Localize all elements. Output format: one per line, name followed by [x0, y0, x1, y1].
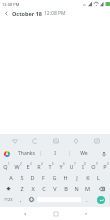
- button[interactable]: N: [71, 183, 82, 194]
- staticText: I: [82, 163, 84, 170]
- staticText: Thanks: [18, 150, 35, 157]
- button[interactable]: .: [82, 194, 92, 205]
- button[interactable]: Emoji: [26, 194, 36, 205]
- button[interactable]: Home: [49, 207, 62, 220]
- staticText: W: [14, 163, 20, 170]
- button[interactable]: J: [71, 172, 82, 183]
- staticText: D: [30, 174, 35, 181]
- button[interactable]: P: [99, 161, 110, 172]
- button[interactable]: Google: [0, 147, 13, 160]
- button[interactable]: I: [41, 147, 69, 160]
- button[interactable]: Thanks: [13, 147, 40, 160]
- button[interactable]: X: [27, 183, 38, 194]
- button[interactable]: A: [5, 172, 16, 183]
- button[interactable]: H: [60, 172, 71, 183]
- button[interactable]: E: [22, 161, 33, 172]
- staticText: ,: [20, 196, 22, 204]
- staticText: F: [42, 174, 45, 181]
- staticText: A: [9, 174, 13, 181]
- button[interactable]: F: [38, 172, 49, 183]
- button[interactable]: GIF: [28, 134, 41, 147]
- button[interactable]: D: [27, 172, 38, 183]
- button[interactable]: Y: [55, 161, 66, 172]
- button[interactable]: Gallery: [49, 134, 62, 147]
- staticText: H: [63, 174, 68, 181]
- button[interactable]: O: [88, 161, 99, 172]
- staticText: Y: [59, 163, 63, 170]
- staticText: 12:08 PM: [44, 10, 66, 17]
- staticText: 4: [41, 162, 43, 166]
- staticText: P: [103, 163, 107, 170]
- staticText: I: [54, 150, 56, 157]
- button[interactable]: W: [11, 161, 22, 172]
- staticText: E: [26, 163, 30, 170]
- button[interactable]: Voice input: [98, 147, 110, 160]
- staticText: T: [48, 163, 52, 170]
- button[interactable]: G: [49, 172, 60, 183]
- button[interactable]: Shift: [0, 183, 16, 194]
- button[interactable]: Z: [16, 183, 27, 194]
- staticText: N: [74, 185, 79, 192]
- staticText: We: [80, 150, 88, 157]
- staticText: 8: [84, 162, 86, 166]
- button[interactable]: B: [60, 183, 71, 194]
- staticText: K: [86, 174, 90, 181]
- button[interactable]: Backspace: [93, 183, 110, 194]
- button[interactable]: Back: [18, 207, 31, 220]
- staticText: O: [91, 163, 96, 170]
- button[interactable]: K: [82, 172, 93, 183]
- staticText: R: [37, 163, 41, 170]
- staticText: Z: [20, 185, 24, 192]
- button[interactable]: S: [16, 172, 27, 183]
- button[interactable]: More: [90, 134, 103, 147]
- button[interactable]: Recents: [79, 207, 92, 220]
- staticText: 1: [8, 162, 10, 166]
- staticText: U: [69, 163, 74, 170]
- button[interactable]: I: [77, 161, 88, 172]
- staticText: 12:08 PM: [2, 2, 20, 7]
- staticText: G: [52, 174, 57, 181]
- button[interactable]: M: [82, 183, 93, 194]
- staticText: Q: [3, 163, 8, 170]
- staticText: V: [53, 185, 57, 192]
- staticText: ?123: [4, 197, 13, 202]
- staticText: B: [64, 185, 68, 192]
- staticText: S: [20, 174, 24, 181]
- staticText: J: [76, 174, 78, 181]
- staticText: 6: [63, 162, 65, 166]
- button[interactable]: C: [38, 183, 49, 194]
- staticText: October 18: [12, 10, 42, 17]
- button[interactable]: V: [49, 183, 60, 194]
- staticText: C: [42, 185, 46, 192]
- staticText: 7: [74, 162, 76, 166]
- staticText: 9: [96, 162, 98, 166]
- button[interactable]: ,: [16, 194, 26, 205]
- button[interactable]: We: [70, 147, 98, 160]
- button[interactable]: Send: [92, 194, 110, 205]
- button[interactable]: Back: [2, 9, 11, 18]
- staticText: 5: [52, 162, 54, 166]
- button[interactable]: L: [93, 172, 104, 183]
- staticText: 3: [30, 162, 32, 166]
- button[interactable]: U: [66, 161, 77, 172]
- button[interactable]: Stickers: [8, 134, 21, 147]
- button[interactable]: ?123: [0, 194, 16, 205]
- staticText: L: [97, 174, 100, 181]
- button[interactable]: R: [33, 161, 44, 172]
- staticText: 0: [107, 162, 109, 166]
- button[interactable]: Location: [69, 134, 82, 147]
- staticText: M: [85, 185, 90, 192]
- staticText: X: [31, 185, 35, 192]
- button[interactable]: Q: [0, 161, 11, 172]
- button[interactable]: T: [44, 161, 55, 172]
- staticText: .: [86, 196, 88, 204]
- staticText: 2: [20, 162, 22, 166]
